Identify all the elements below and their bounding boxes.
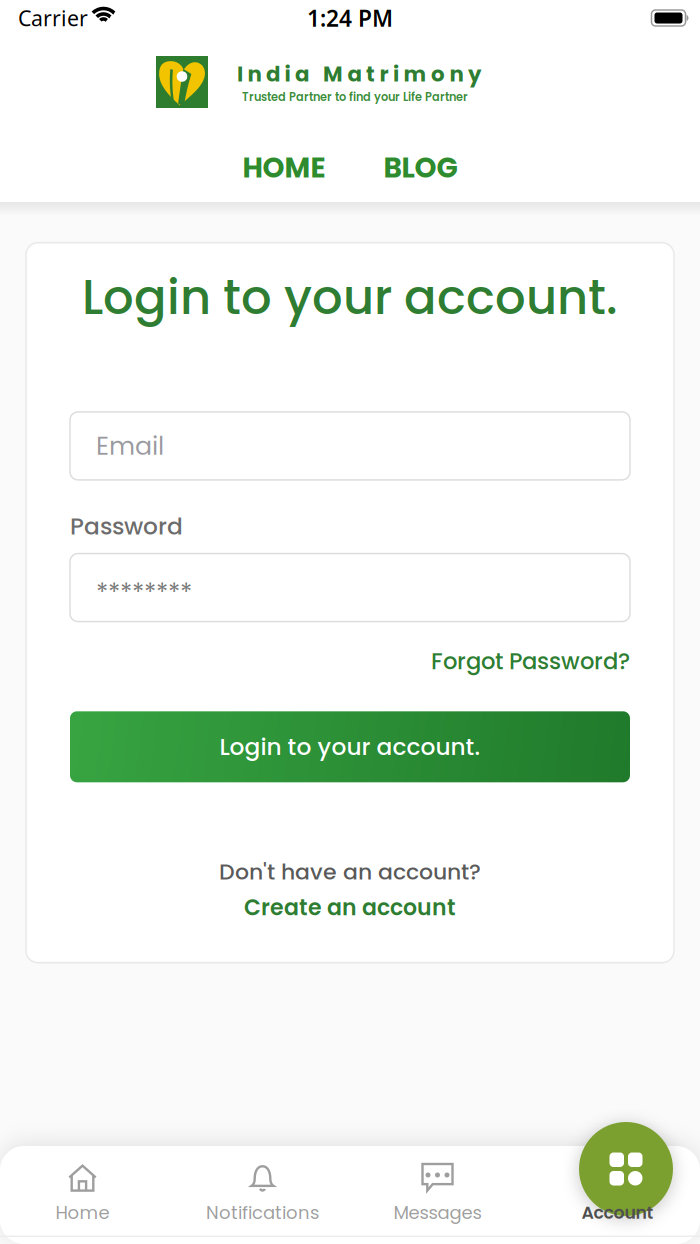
staticText: Trusted Partner to find your Life Partne… bbox=[242, 89, 468, 105]
button[interactable]: Login to your account. bbox=[70, 711, 630, 782]
button[interactable]: Account bbox=[579, 1122, 673, 1216]
staticText: Carrier bbox=[18, 4, 88, 32]
staticText: Notifications bbox=[206, 1200, 319, 1225]
staticText: Account bbox=[581, 1200, 653, 1225]
staticText: BLOG bbox=[383, 148, 457, 187]
staticText: Password bbox=[70, 510, 183, 543]
button[interactable]: Notifications bbox=[206, 1164, 319, 1225]
button[interactable]: BLOG bbox=[383, 148, 457, 187]
button[interactable]: ******** bbox=[70, 554, 630, 622]
staticText: Don't have an account? bbox=[219, 856, 481, 887]
button[interactable]: HOME bbox=[242, 148, 325, 187]
staticText: ******** bbox=[96, 575, 192, 610]
staticText: Home bbox=[55, 1200, 109, 1225]
button[interactable]: Create an account bbox=[244, 892, 456, 923]
button[interactable]: Messages bbox=[393, 1164, 481, 1225]
staticText: Login to your account. bbox=[219, 730, 480, 763]
staticText: HOME bbox=[242, 148, 325, 187]
staticText: Messages bbox=[393, 1200, 481, 1225]
staticText: Create an account bbox=[244, 892, 456, 923]
button[interactable]: Email bbox=[70, 412, 630, 480]
button[interactable]: Forgot Password? bbox=[431, 646, 630, 677]
staticText: Login to your account. bbox=[82, 264, 618, 331]
staticText: 1:24 PM bbox=[307, 3, 393, 33]
button[interactable]: Account bbox=[581, 1164, 653, 1225]
button[interactable]: Home bbox=[55, 1164, 109, 1225]
staticText: Email bbox=[96, 428, 164, 464]
staticText: Forgot Password? bbox=[431, 646, 630, 677]
staticText: India Matrimony bbox=[237, 59, 481, 89]
